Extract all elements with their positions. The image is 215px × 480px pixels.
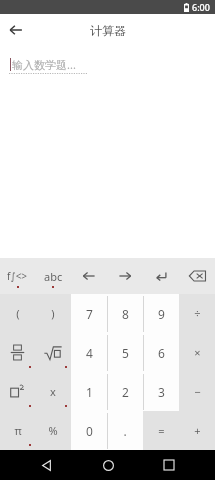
button[interactable]: % (35, 411, 71, 450)
staticText: 输入数学题... (12, 57, 76, 72)
button[interactable]: Power (0, 372, 35, 411)
button[interactable]: 8 (107, 294, 143, 333)
staticText: ( (16, 306, 20, 321)
button[interactable]: = (143, 411, 179, 450)
staticText: 6:00 (192, 1, 210, 13)
button[interactable]: 0 (71, 411, 107, 450)
button[interactable]: Enter (143, 258, 179, 294)
button[interactable]: 9 (143, 294, 179, 333)
staticText: ) (51, 306, 55, 321)
button[interactable]: x (35, 372, 71, 411)
staticText: 9 (158, 306, 165, 322)
button[interactable]: Back (0, 14, 32, 46)
button[interactable]: 2 (107, 372, 143, 411)
button[interactable]: 输入数学题... (0, 46, 215, 82)
button[interactable]: × (179, 333, 215, 372)
button[interactable]: Functions (0, 258, 35, 294)
staticText: 5 (122, 345, 129, 361)
button[interactable]: Recents (154, 450, 184, 480)
button[interactable]: ) (35, 294, 71, 333)
button[interactable]: − (179, 372, 215, 411)
button[interactable]: 3 (143, 372, 179, 411)
button[interactable]: 1 (71, 372, 107, 411)
staticText: f∫<> (7, 269, 28, 283)
staticText: 计算器 (90, 23, 126, 38)
staticText: 6 (158, 345, 165, 361)
button[interactable]: Right (107, 258, 143, 294)
button[interactable]: Backspace (179, 258, 215, 294)
staticText: π (14, 423, 22, 438)
staticText: = (158, 423, 165, 438)
button[interactable]: + (179, 411, 215, 450)
button[interactable]: ÷ (179, 294, 215, 333)
button[interactable]: Left (71, 258, 107, 294)
button[interactable]: 5 (107, 333, 143, 372)
staticText: abc (44, 269, 63, 284)
button[interactable]: Fraction (0, 333, 35, 372)
button[interactable]: Letters (35, 258, 71, 294)
staticText: 8 (122, 306, 129, 322)
staticText: . (123, 423, 127, 439)
button[interactable]: 4 (71, 333, 107, 372)
staticText: x (50, 384, 56, 399)
staticText: 1 (86, 384, 93, 400)
staticText: 4 (86, 345, 93, 361)
staticText: ÷ (194, 306, 201, 321)
button[interactable]: 6 (143, 333, 179, 372)
button[interactable]: . (107, 411, 143, 450)
button[interactable]: 7 (71, 294, 107, 333)
staticText: − (194, 384, 201, 399)
staticText: × (194, 345, 201, 360)
staticText: 2 (122, 384, 129, 400)
button[interactable]: ( (0, 294, 35, 333)
button[interactable]: Square root (35, 333, 71, 372)
staticText: 0 (86, 423, 93, 439)
staticText: 7 (86, 306, 93, 322)
staticText: % (48, 423, 58, 438)
button[interactable]: Home (93, 450, 123, 480)
staticText: 3 (158, 384, 165, 400)
button[interactable]: π (0, 411, 35, 450)
staticText: + (194, 423, 201, 438)
button[interactable]: Back (31, 450, 61, 480)
